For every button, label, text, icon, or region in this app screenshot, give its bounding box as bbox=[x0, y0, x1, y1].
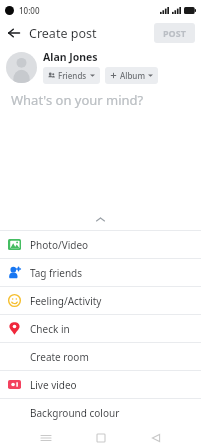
staticText: Create room bbox=[30, 350, 89, 364]
button[interactable]: Live video bbox=[0, 371, 201, 398]
staticText: Friends bbox=[58, 70, 87, 81]
button[interactable]: Back bbox=[5, 24, 23, 42]
button[interactable]: Photo/Video bbox=[0, 231, 201, 258]
staticText: Create post bbox=[29, 25, 97, 42]
staticText: Tag friends bbox=[30, 266, 83, 280]
button[interactable]: Friends bbox=[43, 67, 100, 84]
staticText: Check in bbox=[30, 322, 70, 336]
button[interactable]: Album bbox=[105, 67, 158, 84]
button[interactable]: Feeling/Activity bbox=[0, 287, 201, 314]
button[interactable]: Back bbox=[146, 428, 166, 448]
staticText: Live video bbox=[30, 378, 77, 392]
button[interactable]: Tag friends bbox=[0, 259, 201, 286]
button[interactable]: Create room bbox=[0, 343, 201, 370]
button[interactable]: Collapse sheet bbox=[0, 209, 201, 230]
staticText: POST bbox=[163, 27, 186, 39]
staticText: Feeling/Activity bbox=[30, 294, 102, 308]
button[interactable]: Background colour bbox=[0, 399, 201, 426]
staticText: Photo/Video bbox=[30, 238, 89, 252]
button[interactable]: POST bbox=[154, 23, 195, 43]
staticText: 10:00 bbox=[19, 5, 40, 16]
staticText: Background colour bbox=[30, 406, 120, 420]
button[interactable]: Home bbox=[91, 428, 111, 448]
button[interactable]: Recents bbox=[36, 428, 56, 448]
staticText: Alan Jones bbox=[43, 50, 98, 64]
staticText: Album bbox=[120, 70, 145, 81]
button[interactable]: Check in bbox=[0, 315, 201, 342]
staticText: What's on your mind? bbox=[11, 91, 144, 109]
